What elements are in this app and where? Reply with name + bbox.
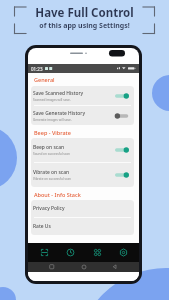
- button[interactable]: Save Generate History: [31, 106, 134, 125]
- staticText: Beep - Vibrate: [34, 129, 71, 136]
- staticText: 01:23: [31, 66, 43, 72]
- staticText: General: [34, 76, 55, 83]
- button[interactable]: Save Scanned History: [31, 86, 134, 105]
- staticText: Vibrate on scan: [33, 169, 70, 176]
- button[interactable]: Back: [108, 262, 122, 272]
- staticText: Have Full Control: [35, 5, 134, 21]
- button[interactable]: Generate: [87, 243, 107, 262]
- button[interactable]: Scan: [34, 243, 54, 262]
- button[interactable]: Settings: [113, 243, 133, 262]
- staticText: Privacy Policy: [33, 205, 65, 212]
- button[interactable]: Beep on scan: [31, 138, 134, 162]
- staticText: Sound on successful scan: [33, 152, 70, 156]
- button[interactable]: Switch on: [115, 146, 131, 154]
- button[interactable]: Rate Us: [31, 218, 134, 235]
- staticText: Save Scanned History: [33, 90, 84, 97]
- staticText: Beep on scan: [33, 144, 65, 151]
- button[interactable]: Recents: [45, 262, 59, 272]
- staticText: About - Info Stack: [34, 191, 81, 198]
- button[interactable]: Vibrate on scan: [31, 163, 134, 187]
- staticText: Generate images will save.: [33, 118, 72, 122]
- staticText: of this app using Settings!: [39, 21, 130, 31]
- button[interactable]: Home: [77, 262, 91, 272]
- button[interactable]: Switch off: [115, 112, 131, 120]
- staticText: Save Generate History: [33, 110, 85, 117]
- button[interactable]: Privacy Policy: [31, 200, 134, 217]
- staticText: Rate Us: [33, 223, 51, 230]
- staticText: Vibrate on successful scan: [33, 177, 72, 181]
- staticText: Scanned images will save.: [33, 98, 71, 102]
- button[interactable]: History: [60, 243, 80, 262]
- button[interactable]: Switch on: [115, 171, 131, 179]
- button[interactable]: Switch on: [115, 92, 131, 100]
